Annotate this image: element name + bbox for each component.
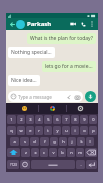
button[interactable]: Nothing special... [8, 47, 55, 58]
button[interactable]: 1 [7, 115, 16, 124]
button[interactable]: 6 [53, 115, 61, 124]
button[interactable]: n [67, 148, 75, 157]
button[interactable]: t [44, 126, 52, 135]
button[interactable]: Attach [66, 94, 72, 100]
staticText: d [33, 139, 36, 144]
button[interactable]: r [35, 126, 43, 135]
button[interactable]: j [68, 137, 76, 146]
button[interactable]: lets go for a movie... [42, 61, 96, 72]
button[interactable]: Camera [74, 94, 80, 100]
staticText: 0 [92, 117, 95, 122]
button[interactable]: 4 [35, 115, 43, 124]
button[interactable]: Nice idea... [8, 75, 40, 86]
button[interactable]: Voice call [78, 19, 88, 29]
button[interactable]: f [40, 137, 49, 146]
button[interactable]: l [86, 137, 94, 146]
button[interactable]: Video call [68, 19, 78, 29]
button[interactable]: w [17, 126, 25, 135]
button[interactable]: y [53, 126, 61, 135]
button[interactable]: q [7, 126, 16, 135]
staticText: Nice idea... [11, 77, 37, 84]
button[interactable]: o [80, 126, 88, 135]
button[interactable]: Settings [67, 103, 94, 114]
staticText: y [56, 128, 59, 133]
staticText: f [44, 139, 46, 144]
button[interactable]: m [76, 148, 84, 157]
button[interactable]: Type a message [8, 91, 83, 102]
staticText: j [71, 139, 73, 144]
button[interactable]: . [76, 160, 85, 169]
button[interactable]: e [26, 126, 34, 135]
button[interactable]: 5 [44, 115, 52, 124]
staticText: s [24, 139, 26, 144]
button[interactable]: 3 [26, 115, 34, 124]
staticText: x [34, 150, 37, 155]
staticText: v [52, 150, 55, 155]
staticText: h [62, 139, 65, 144]
button[interactable]: What is the plan for today? [27, 33, 96, 44]
staticText: e [29, 128, 32, 133]
staticText: 2 [20, 117, 23, 122]
button[interactable]: Emoji [10, 103, 38, 114]
staticText: 8 [74, 117, 77, 122]
button[interactable]: k [77, 137, 85, 146]
button[interactable]: a [10, 137, 19, 146]
staticText: t [47, 128, 49, 133]
button[interactable]: More options [88, 20, 96, 28]
staticText: c [43, 150, 45, 155]
staticText: q [10, 128, 13, 133]
button[interactable]: Enter [86, 160, 97, 169]
button[interactable]: 9 [80, 115, 88, 124]
button[interactable]: d [30, 137, 39, 146]
button[interactable]: Back [8, 20, 16, 28]
staticText: g [53, 139, 56, 144]
staticText: 5 [47, 117, 50, 122]
staticText: 3 [29, 117, 32, 122]
button[interactable]: Contact photo [16, 20, 25, 29]
button[interactable]: Backspace [85, 148, 97, 157]
button[interactable]: b [58, 148, 66, 157]
staticText: i [74, 128, 76, 133]
staticText: . [80, 162, 82, 167]
button[interactable]: Shift [7, 148, 20, 157]
button[interactable]: g [50, 137, 58, 146]
button[interactable]: Themes [39, 103, 66, 114]
staticText: k [80, 139, 83, 144]
button[interactable]: h [59, 137, 67, 146]
staticText: 9 [83, 117, 86, 122]
button[interactable]: Record voice message [85, 91, 96, 102]
button[interactable]: s [20, 137, 29, 146]
staticText: lets go for a movie... [45, 63, 93, 70]
button[interactable]: Space [31, 160, 75, 169]
staticText: What is the plan for today? [30, 35, 93, 42]
staticText: 1 [10, 117, 13, 122]
staticText: ?123 [10, 163, 17, 167]
button[interactable]: 2 [17, 115, 25, 124]
staticText: 7 [65, 117, 68, 122]
button[interactable]: Emoji keyboard [20, 160, 30, 169]
button[interactable]: x [31, 148, 39, 157]
button[interactable]: 0 [89, 115, 97, 124]
staticText: z [25, 150, 27, 155]
staticText: Nothing special... [11, 49, 52, 56]
staticText: u [65, 128, 68, 133]
staticText: m [78, 150, 82, 155]
staticText: b [61, 150, 64, 155]
button[interactable]: 8 [71, 115, 79, 124]
button[interactable]: z [21, 148, 30, 157]
button[interactable]: v [49, 148, 57, 157]
staticText: p [92, 128, 95, 133]
staticText: r [38, 128, 40, 133]
staticText: n [70, 150, 73, 155]
staticText: l [89, 139, 91, 144]
button[interactable]: i [71, 126, 79, 135]
button[interactable]: p [89, 126, 97, 135]
button[interactable]: u [62, 126, 70, 135]
button[interactable]: ?123 [7, 160, 19, 169]
staticText: Type a message [18, 94, 66, 100]
staticText: o [83, 128, 86, 133]
button[interactable]: c [40, 148, 48, 157]
button[interactable]: 7 [62, 115, 70, 124]
button[interactable]: Parkash [27, 20, 52, 28]
staticText: 4 [38, 117, 41, 122]
